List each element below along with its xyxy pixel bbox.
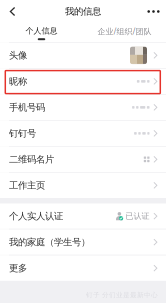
staticText: 个人信息 <box>25 26 57 36</box>
button[interactable]: 昵称 <box>0 69 166 94</box>
staticText: 企业/组织/团队 <box>97 26 151 37</box>
button[interactable]: 工作主页 <box>0 173 166 198</box>
staticText: 我的信息 <box>65 6 101 17</box>
button[interactable]: 返回 <box>0 0 25 23</box>
button[interactable]: 个人信息 <box>0 23 83 42</box>
staticText: 钉子 分们业是最新中心 <box>86 291 158 299</box>
staticText: 钉钉号 <box>9 128 36 139</box>
button[interactable]: 头像 <box>0 43 166 68</box>
button[interactable]: 个人实人认证 <box>0 203 166 229</box>
staticText: 更多 <box>9 262 27 274</box>
staticText: 头像 <box>9 50 27 61</box>
staticText: 昵称 <box>9 76 27 87</box>
button[interactable]: 我的家庭（学生号） <box>0 229 166 255</box>
staticText: 已认证 <box>125 211 149 221</box>
button[interactable]: 更多 <box>0 255 166 281</box>
button[interactable]: 二维码名片 <box>0 147 166 172</box>
button[interactable]: 更多操作 <box>141 0 166 23</box>
button[interactable]: 钉钉号 <box>0 121 166 146</box>
staticText: 个人实人认证 <box>9 210 63 222</box>
staticText: 工作主页 <box>9 180 45 191</box>
staticText: 我的家庭（学生号） <box>9 236 90 248</box>
staticText: 二维码名片 <box>9 154 54 165</box>
staticText: 手机号码 <box>9 102 45 113</box>
button[interactable]: 手机号码 <box>0 95 166 120</box>
button[interactable]: 企业/组织/团队 <box>83 23 166 42</box>
